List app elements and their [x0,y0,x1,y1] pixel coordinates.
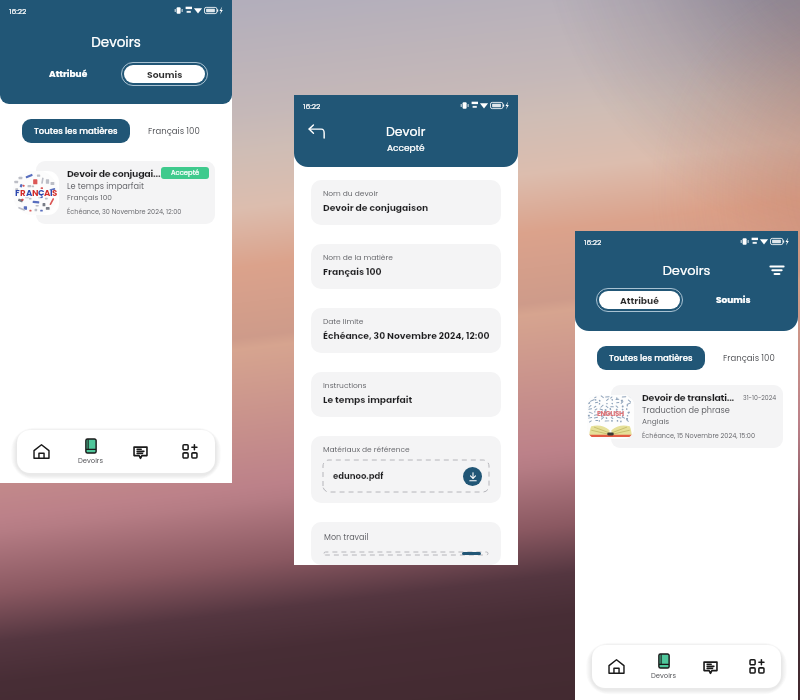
button[interactable]: Attribué [593,288,686,312]
staticText: N [32,187,38,199]
staticText: Le temps imparfait [323,393,413,406]
staticText: Devoir de conjugaison [323,201,429,214]
button[interactable]: Accueil [592,645,640,688]
staticText: A [26,187,32,199]
button[interactable]: Plus [165,430,215,473]
staticText: Mon travail [324,532,369,543]
staticText: Devoir [386,123,426,140]
staticText: Accepté [387,142,425,155]
button[interactable]: Nom de la matière [311,244,501,289]
staticText: Devoirs [0,33,232,52]
staticText: Nom de la matière [323,252,393,262]
button[interactable]: Messages [115,430,165,473]
staticText: Devoir de translati... [642,391,740,404]
button[interactable]: Devoir de conjugai... [36,161,215,224]
staticText: Toutes les matières [609,352,693,364]
staticText: Devoirs [575,261,798,279]
staticText: Anglais [642,416,670,428]
staticText: Échéance, 30 Novembre 2024, 12:00 [323,329,490,342]
button[interactable]: Accueil [17,430,66,473]
staticText: Le temps imparfait [67,180,145,192]
button[interactable]: Toutes les matières [597,346,705,370]
staticText: Soumis [147,68,183,81]
button[interactable]: Attribué [20,62,116,86]
button[interactable]: Filtrer [768,261,786,279]
button[interactable]: Instructions [311,372,501,417]
button[interactable]: Toutes les matières [22,119,130,143]
staticText: Échéance, 30 Novembre 2024, 12:00 [67,207,182,216]
staticText: Attribué [620,294,659,307]
staticText: Français 100 [67,192,112,204]
button[interactable]: Plus [734,645,781,688]
staticText: Devoir de conjugai... [67,167,161,180]
staticText: Français 100 [148,125,200,137]
staticText: Matériaux de référence [323,444,410,454]
staticText: Français 100 [723,352,775,364]
staticText: I [50,187,52,199]
button[interactable]: Télécharger [463,467,482,486]
staticText: 16:22 [584,237,602,247]
staticText: S [52,187,57,199]
staticText: 16:22 [303,101,321,111]
staticText: Ç [38,187,44,199]
staticText: Traduction de phrase [642,404,730,416]
button[interactable]: Date limite [311,308,501,353]
staticText: R [20,187,26,199]
staticText: Attribué [49,68,88,81]
button[interactable]: Français 100 [144,119,204,143]
button[interactable]: Français 100 [719,346,779,370]
staticText: Toutes les matières [34,125,118,137]
staticText: Devoirs [78,456,103,466]
staticText: ENGLISH [597,409,624,419]
button[interactable]: Messages [687,645,734,688]
button[interactable]: Soumis [116,62,212,86]
button[interactable]: Retour [307,123,325,141]
staticText: F [15,187,20,199]
staticText: Soumis [716,294,751,307]
button[interactable]: Nom du devoir [311,180,501,225]
staticText: Français 100 [323,265,382,278]
staticText: 16:22 [9,6,27,16]
button[interactable]: Devoirs [66,430,115,473]
staticText: Devoirs [651,671,676,681]
staticText: 31-10-2024 [743,393,777,402]
button[interactable]: Devoirs [640,645,687,688]
staticText: Échéance, 15 Novembre 2024, 15:00 [642,431,755,440]
staticText: A [44,187,50,199]
staticText: Nom du devoir [323,188,379,198]
staticText: Date limite [323,316,364,326]
staticText: Accepté [171,168,200,178]
button[interactable]: Devoir de translati... [611,385,783,448]
button[interactable]: Soumis [686,288,780,312]
staticText: Instructions [323,380,367,390]
staticText: edunoo.pdf [333,470,384,482]
